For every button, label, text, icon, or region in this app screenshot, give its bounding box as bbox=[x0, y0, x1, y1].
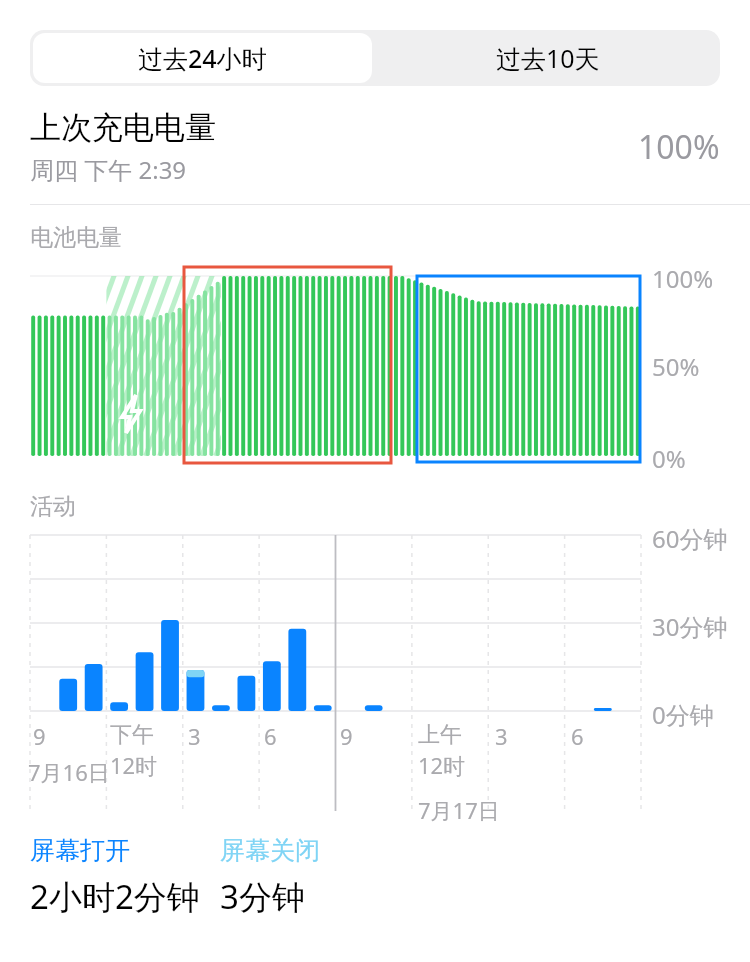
staticText: 3分钟 bbox=[220, 874, 305, 919]
staticText: 50% bbox=[652, 350, 700, 383]
button[interactable]: 屏幕关闭 bbox=[220, 835, 320, 919]
staticText: 电池电量 bbox=[30, 223, 122, 252]
staticText: 0分钟 bbox=[652, 698, 714, 731]
staticText: 屏幕打开 bbox=[30, 835, 130, 866]
staticText: 屏幕关闭 bbox=[220, 835, 320, 866]
staticText: 9 bbox=[33, 721, 46, 751]
staticText: 3 bbox=[495, 721, 508, 751]
button[interactable]: 过去24小时 bbox=[33, 33, 372, 83]
staticText: 0% bbox=[652, 442, 686, 475]
staticText: 100% bbox=[638, 125, 720, 169]
button[interactable]: 过去10天 bbox=[375, 30, 720, 86]
staticText: 7月17日 bbox=[418, 795, 500, 825]
staticText: 下午 12时 bbox=[110, 721, 158, 780]
staticText: 过去24小时 bbox=[138, 41, 267, 75]
button[interactable]: 屏幕打开 bbox=[30, 835, 210, 919]
staticText: 活动 bbox=[30, 492, 76, 521]
staticText: 上次充电电量 bbox=[30, 108, 216, 147]
staticText: 30分钟 bbox=[652, 610, 728, 643]
staticText: 周四 下午 2:39 bbox=[30, 153, 187, 186]
staticText: 100% bbox=[652, 262, 714, 295]
staticText: 7月16日 bbox=[28, 757, 110, 787]
staticText: 6 bbox=[264, 721, 277, 751]
staticText: 3 bbox=[188, 721, 201, 751]
staticText: 上午 12时 bbox=[418, 721, 466, 780]
staticText: 6 bbox=[571, 721, 584, 751]
staticText: 60分钟 bbox=[652, 522, 728, 555]
staticText: 9 bbox=[340, 721, 353, 751]
staticText: 过去10天 bbox=[496, 41, 600, 75]
staticText: 2小时2分钟 bbox=[30, 874, 200, 919]
